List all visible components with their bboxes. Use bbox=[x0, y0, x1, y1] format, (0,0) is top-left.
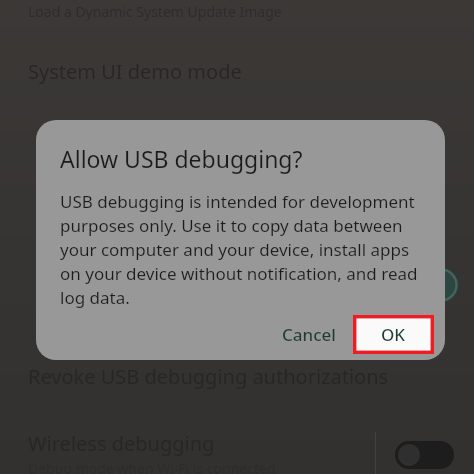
staticText: Wireless debugging bbox=[28, 430, 215, 457]
staticText: USB debugging is intended for developmen… bbox=[60, 190, 425, 309]
button[interactable]: Cancel bbox=[268, 315, 350, 354]
button[interactable]: OK bbox=[353, 315, 434, 354]
staticText: Revoke USB debugging authorizations bbox=[28, 363, 389, 390]
staticText: OK bbox=[381, 323, 406, 346]
staticText: Load a Dynamic System Update Image bbox=[28, 2, 282, 21]
staticText: System UI demo mode bbox=[28, 58, 242, 85]
staticText: Cancel bbox=[282, 323, 336, 346]
button[interactable]: Wireless debugging toggle bbox=[395, 441, 454, 469]
staticText: Allow USB debugging? bbox=[60, 143, 303, 174]
